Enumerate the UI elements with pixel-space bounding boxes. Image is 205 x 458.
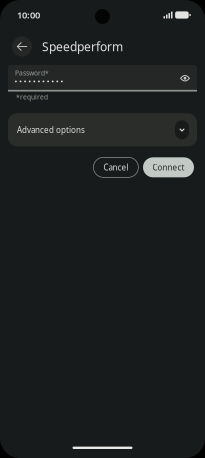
staticText: Advanced options: [17, 124, 85, 135]
staticText: *required: [16, 92, 48, 101]
button[interactable]: Back: [12, 36, 32, 56]
staticText: Cancel: [103, 162, 128, 173]
staticText: Speedperform: [42, 38, 123, 54]
button[interactable]: Advanced options: [8, 113, 197, 146]
button[interactable]: Connect: [143, 157, 194, 177]
staticText: 10:00: [17, 9, 40, 21]
staticText: Connect: [152, 162, 184, 173]
button[interactable]: Cancel: [93, 157, 138, 177]
button[interactable]: Show password: [177, 70, 193, 86]
staticText: Password*: [15, 69, 49, 77]
